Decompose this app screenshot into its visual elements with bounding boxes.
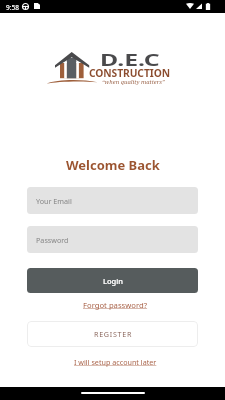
staticText: CONSTRUCTION [89,66,170,80]
staticText: Login [103,276,123,286]
button[interactable]: Forgot password? [78,300,148,310]
button[interactable]: Login [27,268,198,293]
staticText: 9:58 [6,3,19,12]
button[interactable]: Password [27,226,198,253]
staticText: D.E.C [100,49,160,71]
button[interactable]: Your Email [27,187,198,214]
staticText: Password [36,235,69,245]
button[interactable]: Home [81,392,145,394]
button[interactable]: REGISTER [27,321,198,347]
staticText: Your Email [36,196,72,206]
staticText: REGISTER [94,329,133,339]
button[interactable]: I will setup account later [68,357,157,367]
staticText: Welcome Back [66,156,160,174]
staticText: “when quality matters” [102,78,165,86]
